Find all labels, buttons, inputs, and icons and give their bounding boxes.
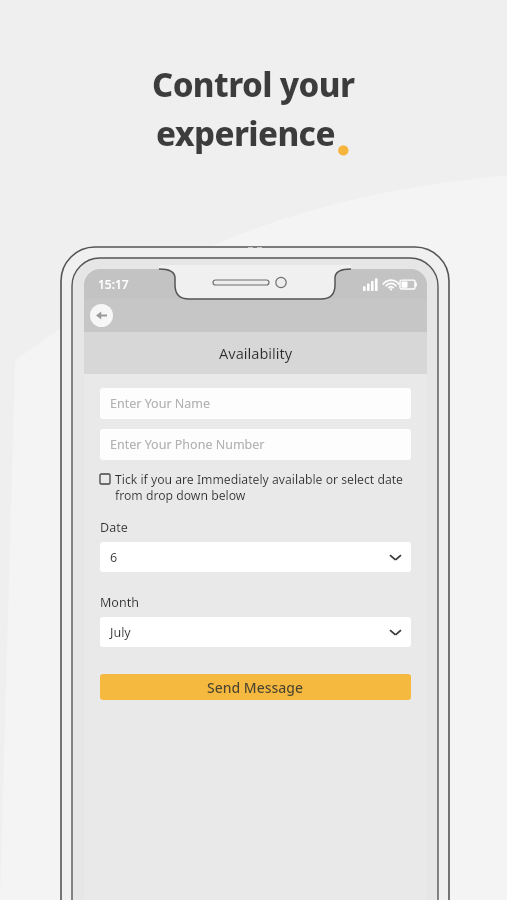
staticText: Enter Your Phone Number — [110, 436, 265, 453]
button[interactable]: Back — [90, 304, 113, 327]
staticText: 15:17 — [98, 276, 129, 292]
staticText: Send Message — [207, 678, 304, 697]
staticText: Control your — [152, 62, 355, 107]
staticText: experience — [156, 111, 335, 156]
button[interactable]: Send Message — [100, 674, 411, 700]
staticText: 6 — [110, 549, 118, 566]
button[interactable]: Enter Your Name — [100, 388, 411, 419]
staticText: Month — [100, 594, 139, 611]
button[interactable]: Tick if you are Immediately available or… — [100, 471, 411, 503]
staticText: Date — [100, 519, 128, 536]
button[interactable]: July — [100, 617, 411, 647]
staticText: Availability — [219, 343, 293, 363]
staticText: Tick if you are Immediately available or… — [115, 471, 411, 503]
staticText: Enter Your Name — [110, 395, 211, 412]
button[interactable]: 6 — [100, 542, 411, 572]
staticText: July — [110, 624, 131, 641]
button[interactable]: Enter Your Phone Number — [100, 429, 411, 460]
